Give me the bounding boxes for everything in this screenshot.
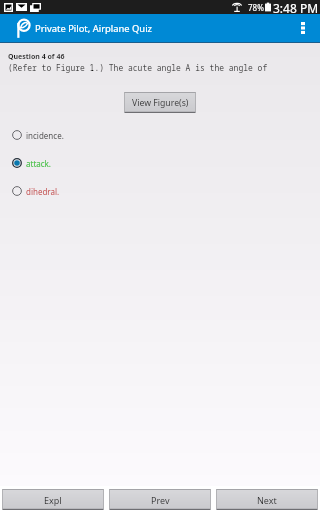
button[interactable]: Expl	[2, 489, 104, 510]
button[interactable]: More options	[291, 16, 315, 40]
staticText: Next	[257, 494, 277, 506]
staticText: Private Pilot, Airplane Quiz	[35, 22, 152, 35]
staticText: Question 4 of 46	[8, 52, 65, 62]
staticText: dihedral.	[26, 186, 60, 197]
staticText: Prev	[151, 494, 170, 506]
button[interactable]: incidence.	[0, 121, 320, 149]
button[interactable]: attack.	[0, 149, 320, 177]
staticText: 3:48 PM	[273, 0, 319, 14]
staticText: Expl	[44, 494, 62, 506]
staticText: attack.	[26, 158, 52, 169]
button[interactable]: Next	[216, 489, 318, 510]
button[interactable]: dihedral.	[0, 177, 320, 205]
button[interactable]: View Figure(s)	[124, 92, 196, 113]
staticText: 78%	[248, 2, 264, 13]
staticText: (Refer to Figure 1.) The acute angle A i…	[8, 62, 268, 73]
staticText: incidence.	[26, 130, 64, 141]
button[interactable]: Prev	[109, 489, 211, 510]
staticText: View Figure(s)	[132, 97, 189, 109]
